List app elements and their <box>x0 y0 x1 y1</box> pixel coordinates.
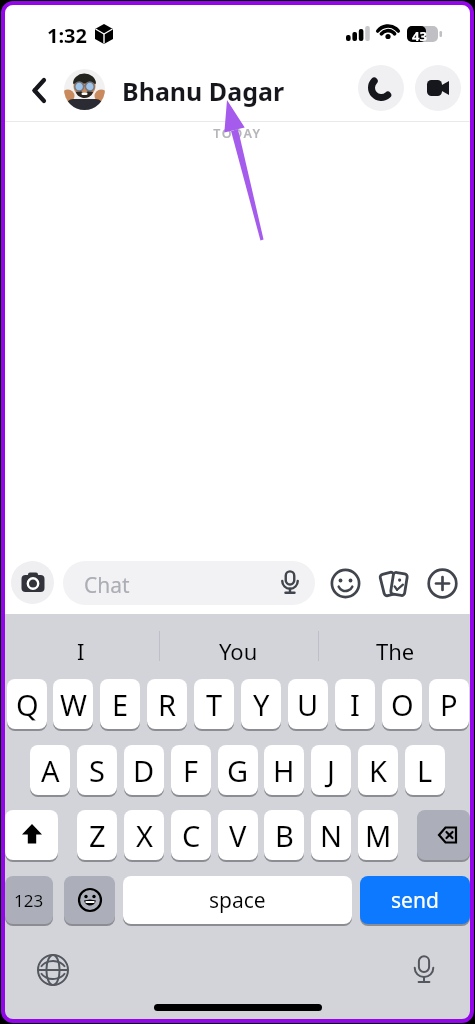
button[interactable] <box>5 810 58 862</box>
staticText: 43 <box>412 27 427 45</box>
staticText: space <box>209 886 266 915</box>
button[interactable]: space <box>123 876 352 926</box>
staticText: Z <box>89 816 106 855</box>
staticText: The <box>376 636 415 666</box>
staticText: R <box>158 685 177 724</box>
staticText: U <box>297 685 319 724</box>
button[interactable]: K <box>358 745 398 797</box>
button[interactable]: I <box>335 679 375 731</box>
button[interactable]: V <box>218 810 258 862</box>
staticText: N <box>320 816 343 855</box>
staticText: V <box>229 816 247 855</box>
button[interactable] <box>34 951 72 989</box>
button[interactable]: N <box>311 810 351 862</box>
staticText: G <box>227 751 249 790</box>
button[interactable]: G <box>218 745 258 797</box>
button[interactable]: C <box>171 810 211 862</box>
staticText: K <box>369 751 387 790</box>
staticText: D <box>133 751 155 790</box>
staticText: T <box>206 685 223 724</box>
staticText: Q <box>16 685 39 724</box>
button[interactable]: R <box>147 679 187 731</box>
button[interactable] <box>330 568 361 599</box>
button[interactable] <box>64 69 105 110</box>
staticText: L <box>417 751 433 790</box>
button[interactable] <box>64 876 115 926</box>
staticText: Bhanu Dagar <box>122 74 285 108</box>
staticText: B <box>275 816 294 855</box>
button[interactable]: E <box>100 679 140 731</box>
staticText: You <box>219 636 258 666</box>
button[interactable]: Q <box>7 679 47 731</box>
button[interactable]: S <box>77 745 117 797</box>
button[interactable] <box>405 951 443 989</box>
button[interactable]: F <box>171 745 211 797</box>
staticText: M <box>365 816 392 855</box>
staticText: H <box>273 751 295 790</box>
button[interactable]: D <box>124 745 164 797</box>
button[interactable]: B <box>264 810 304 862</box>
button[interactable] <box>358 65 404 111</box>
button[interactable]: Chat <box>63 561 315 605</box>
button[interactable]: P <box>429 679 469 731</box>
button[interactable]: X <box>124 810 164 862</box>
button[interactable]: A <box>30 745 70 797</box>
button[interactable] <box>417 810 470 862</box>
staticText: I <box>350 685 360 724</box>
staticText: E <box>112 685 129 724</box>
staticText: A <box>41 751 60 790</box>
button[interactable]: 123 <box>5 876 53 926</box>
button[interactable] <box>11 561 54 604</box>
button[interactable]: H <box>264 745 304 797</box>
staticText: TODAY <box>213 125 262 142</box>
staticText: O <box>391 685 414 724</box>
staticText: 1:32 <box>47 22 87 49</box>
staticText: X <box>136 816 153 855</box>
staticText: Chat <box>84 571 130 600</box>
staticText: 123 <box>14 889 44 912</box>
button[interactable]: T <box>194 679 234 731</box>
button[interactable]: send <box>360 876 470 926</box>
staticText: S <box>89 751 105 790</box>
button[interactable] <box>427 568 458 599</box>
staticText: J <box>327 751 335 790</box>
staticText: I <box>77 636 85 666</box>
button[interactable]: W <box>53 679 93 731</box>
button[interactable]: L <box>405 745 445 797</box>
button[interactable]: O <box>382 679 422 731</box>
button[interactable] <box>377 567 411 601</box>
staticText: send <box>391 886 439 915</box>
button[interactable]: Y <box>241 679 281 731</box>
button[interactable]: U <box>288 679 328 731</box>
button[interactable]: J <box>311 745 351 797</box>
staticText: F <box>183 751 199 790</box>
button[interactable]: M <box>358 810 398 862</box>
staticText: Y <box>253 685 270 724</box>
button[interactable]: Z <box>77 810 117 862</box>
staticText: P <box>440 685 458 724</box>
staticText: C <box>182 816 201 855</box>
button[interactable] <box>415 65 461 111</box>
button[interactable] <box>25 69 57 113</box>
staticText: W <box>60 685 87 724</box>
